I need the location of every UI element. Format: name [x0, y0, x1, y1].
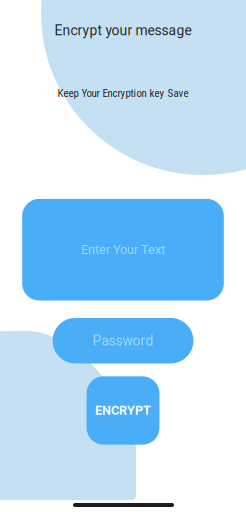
button[interactable]: Enter Your Text [22, 199, 224, 300]
staticText: Encrypt your message [54, 22, 191, 39]
staticText: Keep Your Encryption key Save [57, 87, 188, 100]
staticText: Enter Your Text [81, 242, 165, 257]
button[interactable]: Password [53, 318, 193, 363]
staticText: ENCRYPT [95, 403, 151, 418]
button[interactable]: ENCRYPT [86, 376, 159, 445]
staticText: Password [92, 333, 153, 349]
